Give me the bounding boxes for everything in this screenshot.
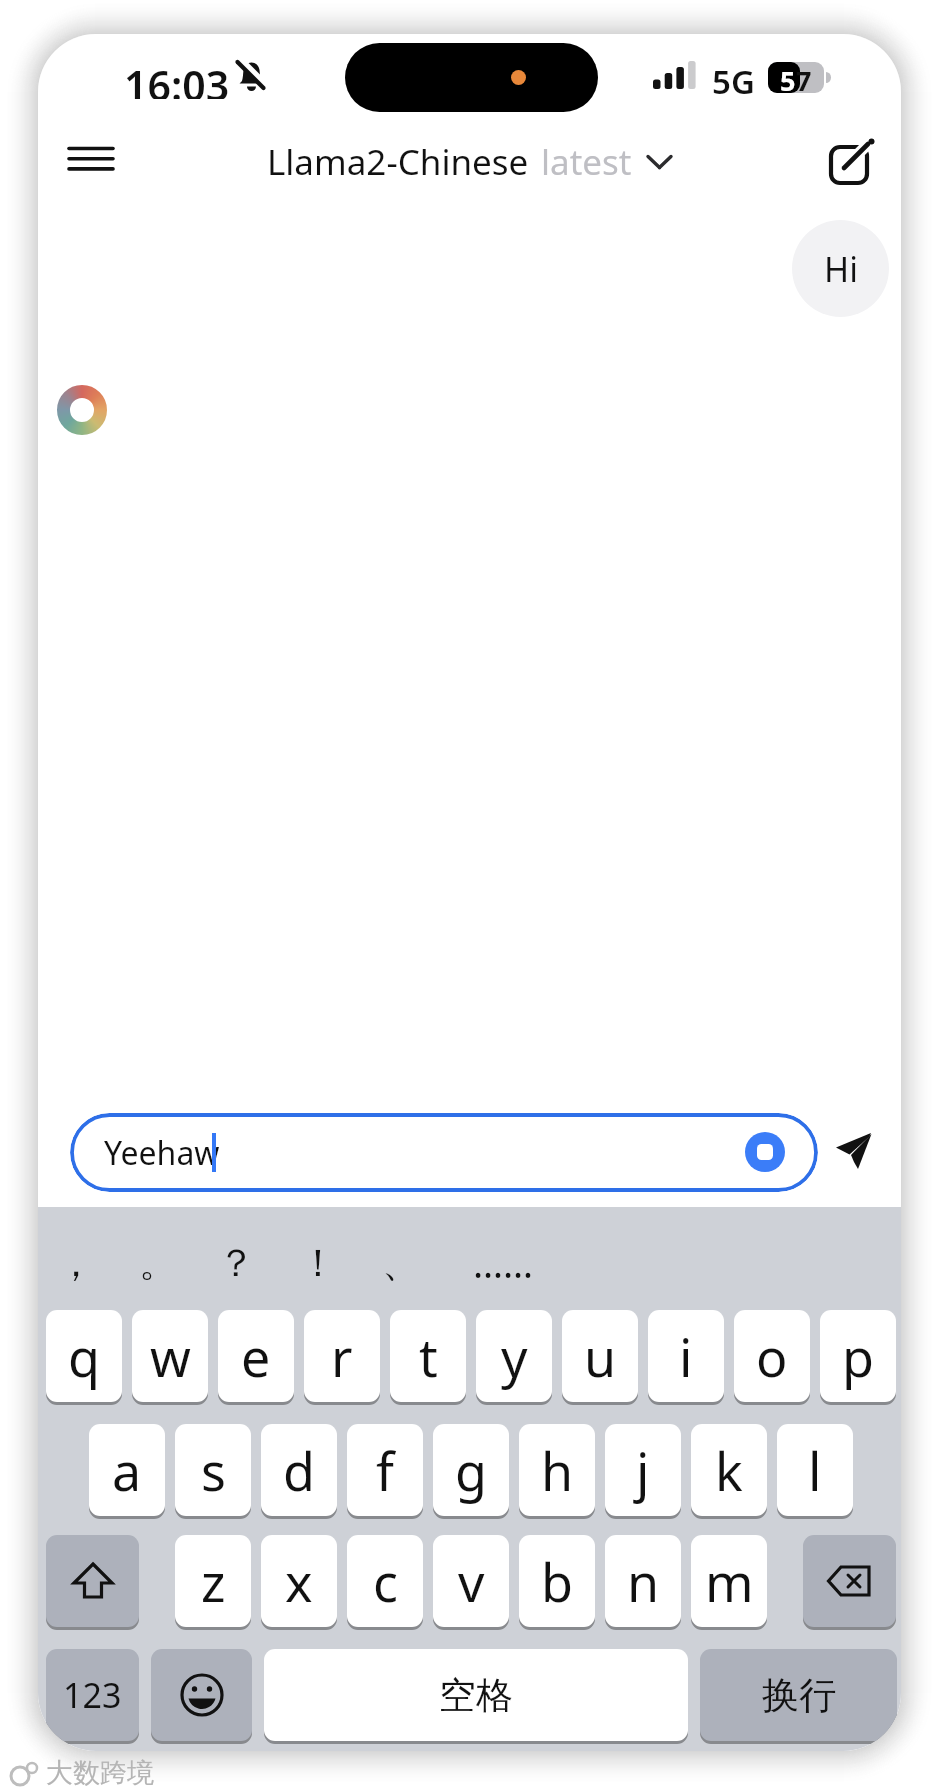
staticText: 7 [796, 62, 812, 93]
staticText: v [458, 1546, 485, 1617]
button[interactable]: i [648, 1310, 724, 1405]
staticText: 16:03 [124, 57, 230, 99]
staticText: 、 [382, 1239, 420, 1287]
button[interactable]: 、 [364, 1235, 438, 1291]
staticText: g [455, 1435, 487, 1506]
staticText: ？ [217, 1239, 255, 1287]
staticText: ， [57, 1239, 95, 1287]
button[interactable]: Yeehaw [70, 1113, 818, 1192]
button[interactable]: m [691, 1535, 767, 1630]
button[interactable]: d [261, 1424, 337, 1519]
staticText: Hi [824, 246, 858, 292]
button[interactable]: z [175, 1535, 251, 1630]
button[interactable]: q [46, 1310, 122, 1405]
button[interactable]: n [605, 1535, 681, 1630]
button[interactable]: 换行 [700, 1649, 897, 1744]
staticText: p [842, 1321, 874, 1392]
staticText: c [373, 1546, 398, 1617]
staticText: 换行 [762, 1672, 836, 1719]
staticText: b [541, 1546, 573, 1617]
staticText: x [285, 1546, 313, 1617]
button[interactable]: f [347, 1424, 423, 1519]
button[interactable]: p [820, 1310, 896, 1405]
button[interactable] [69, 145, 113, 173]
staticText: e [241, 1321, 271, 1392]
staticText: z [201, 1546, 226, 1617]
staticText: h [541, 1435, 574, 1506]
button[interactable]: Llama2-Chinese [267, 138, 672, 186]
button[interactable] [745, 1132, 785, 1172]
staticText: i [679, 1321, 693, 1392]
button[interactable]: e [218, 1310, 294, 1405]
button[interactable]: j [605, 1424, 681, 1519]
button[interactable]: w [132, 1310, 208, 1405]
staticText: r [331, 1321, 353, 1392]
staticText: 5G [712, 59, 755, 97]
button[interactable] [803, 1535, 896, 1630]
button[interactable]: 。 [121, 1235, 195, 1291]
button[interactable]: t [390, 1310, 466, 1405]
button[interactable]: ？ [199, 1235, 273, 1291]
staticText: m [705, 1546, 754, 1617]
staticText: t [419, 1321, 438, 1392]
button[interactable]: r [304, 1310, 380, 1405]
staticText: ！ [299, 1239, 337, 1287]
staticText: Yeehaw [104, 1131, 220, 1175]
staticText: u [584, 1321, 617, 1392]
staticText: 5 [780, 62, 796, 93]
staticText: o [756, 1321, 788, 1392]
staticText: w [150, 1321, 191, 1392]
button[interactable]: x [261, 1535, 337, 1630]
button[interactable]: u [562, 1310, 638, 1405]
staticText: 大数跨境 [46, 1756, 154, 1790]
button[interactable]: ， [39, 1235, 113, 1291]
button[interactable]: a [89, 1424, 165, 1519]
staticText: 空格 [439, 1672, 513, 1719]
staticText: d [283, 1435, 315, 1506]
staticText: Llama2-Chinese [267, 138, 529, 186]
button[interactable] [46, 1535, 139, 1630]
staticText: …… [473, 1237, 534, 1289]
staticText: n [627, 1546, 660, 1617]
staticText: q [68, 1321, 100, 1392]
staticText: y [501, 1321, 528, 1392]
button[interactable]: 空格 [264, 1649, 688, 1744]
button[interactable]: c [347, 1535, 423, 1630]
staticText: a [112, 1435, 142, 1506]
button[interactable]: v [433, 1535, 509, 1630]
staticText: 123 [63, 1672, 122, 1718]
button[interactable]: h [519, 1424, 595, 1519]
button[interactable]: o [734, 1310, 810, 1405]
staticText: 。 [139, 1239, 177, 1287]
button[interactable]: Hi [792, 220, 889, 317]
button[interactable]: ！ [281, 1235, 355, 1291]
button[interactable] [835, 1131, 875, 1171]
button[interactable]: s [175, 1424, 251, 1519]
button[interactable] [151, 1649, 252, 1744]
button[interactable] [829, 140, 873, 184]
button[interactable]: 123 [46, 1649, 139, 1744]
button[interactable]: g [433, 1424, 509, 1519]
staticText: f [376, 1435, 394, 1506]
button[interactable]: y [476, 1310, 552, 1405]
button[interactable]: k [691, 1424, 767, 1519]
staticText: s [201, 1435, 226, 1506]
button[interactable]: …… [466, 1235, 540, 1291]
staticText: j [636, 1435, 650, 1506]
button[interactable]: l [777, 1424, 853, 1519]
staticText: latest [541, 138, 632, 186]
staticText: k [715, 1435, 743, 1506]
button[interactable]: b [519, 1535, 595, 1630]
staticText: l [808, 1435, 822, 1506]
